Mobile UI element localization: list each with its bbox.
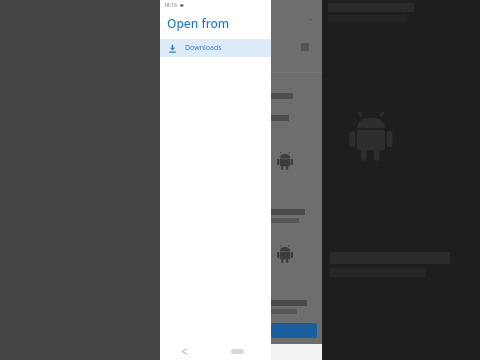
staticText: 18:16 — [164, 2, 177, 9]
button[interactable] — [271, 323, 317, 338]
button[interactable]: Back — [182, 349, 187, 354]
staticText: Downloads — [185, 43, 222, 53]
staticText: Open from — [167, 15, 230, 31]
button[interactable]: Downloads — [160, 39, 271, 57]
button[interactable]: Home — [231, 349, 244, 354]
